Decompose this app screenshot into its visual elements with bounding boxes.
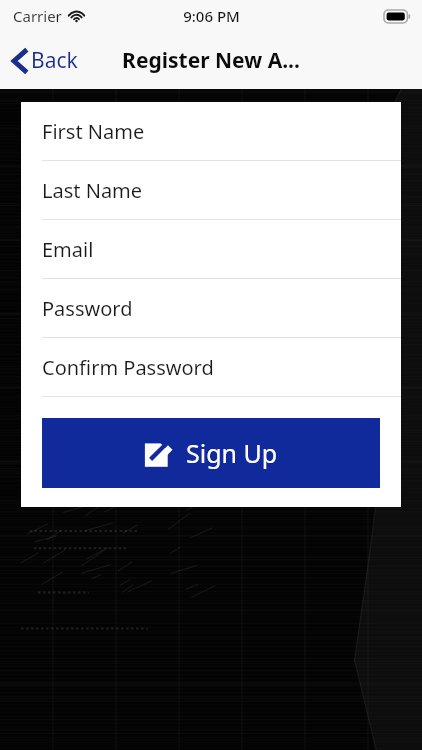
button[interactable]: First Name	[21, 102, 401, 160]
staticText: Last Name	[42, 177, 143, 204]
staticText: Carrier	[13, 6, 62, 26]
button[interactable]: Confirm Password	[21, 338, 401, 396]
button[interactable]: Last Name	[21, 161, 401, 219]
button[interactable]: Password	[21, 279, 401, 337]
staticText: Sign Up	[186, 436, 278, 470]
staticText: Email	[42, 236, 94, 263]
staticText: Confirm Password	[42, 354, 214, 381]
staticText: Password	[42, 295, 133, 322]
button[interactable]: Sign Up	[42, 418, 380, 488]
staticText: 9:06 PM	[183, 6, 240, 26]
button[interactable]: Back	[8, 40, 83, 81]
button[interactable]: Email	[21, 220, 401, 278]
staticText: Register New A...	[122, 46, 300, 75]
staticText: First Name	[42, 118, 145, 145]
staticText: Back	[31, 46, 78, 75]
